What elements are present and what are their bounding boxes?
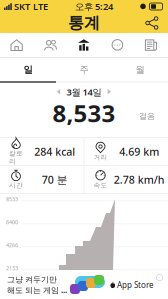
staticText: 그냥 켜두기만 [7, 275, 57, 285]
button[interactable]: Share [141, 13, 163, 33]
button[interactable]: 그냥 켜두기만 [0, 271, 168, 299]
staticText: 4.69 km [119, 144, 159, 159]
staticText: 2.78 km/h [114, 172, 165, 187]
button[interactable]: News [134, 33, 168, 57]
staticText: 월 [135, 64, 144, 75]
staticText: 2133 [6, 265, 18, 272]
button[interactable]: Home [0, 33, 34, 57]
button[interactable]: Friends [34, 33, 67, 57]
staticText: 8,533 [52, 97, 115, 129]
staticText: 해도 되는 게임 모음 [7, 285, 67, 295]
staticText: 8533 [6, 196, 18, 203]
button[interactable]: 주 [56, 58, 112, 81]
button[interactable]: Chat [101, 33, 134, 57]
staticText: 3월 14일 [66, 86, 101, 98]
staticText: 걸음 [139, 111, 155, 121]
staticText: 통계 [68, 13, 100, 33]
staticText: 일 [23, 64, 32, 75]
button[interactable]: Next day [101, 84, 117, 100]
button[interactable]: 일 [0, 58, 56, 81]
staticText: SKT [14, 0, 30, 13]
button[interactable]: 월 [112, 58, 168, 81]
staticText: 4266 [6, 242, 18, 249]
staticText: 오후 5:24 [75, 0, 113, 13]
staticText: 284 kcal [34, 144, 75, 159]
button[interactable]: Statistics [67, 33, 101, 57]
staticText: 속도 [93, 181, 107, 189]
staticText: App Store [117, 280, 154, 290]
staticText: 주 [79, 64, 88, 75]
staticText: 시간 [9, 181, 23, 189]
staticText: 칼로리 [9, 149, 23, 165]
staticText: 거리 [93, 153, 107, 161]
staticText: 70 분 [42, 172, 68, 187]
button[interactable]: Previous day [50, 84, 66, 100]
staticText: 6400 [6, 219, 18, 226]
staticText: LTE [33, 0, 48, 13]
